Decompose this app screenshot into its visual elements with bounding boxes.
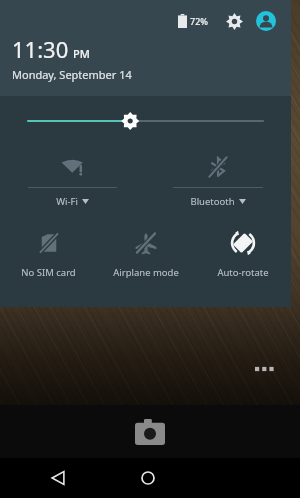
- staticText: PM: [73, 46, 90, 61]
- button[interactable]: No SIM card: [0, 220, 97, 294]
- button[interactable]: Wi-Fi: [0, 146, 145, 220]
- button[interactable]: Airplane mode: [97, 220, 194, 294]
- staticText: Auto-rotate: [217, 266, 269, 279]
- button[interactable]: Settings: [221, 8, 247, 34]
- button[interactable]: Camera: [128, 410, 172, 454]
- staticText: 11:30: [12, 34, 69, 64]
- staticText: Bluetooth: [190, 195, 235, 208]
- staticText: No SIM card: [21, 266, 76, 279]
- button[interactable]: 11:30: [12, 34, 132, 82]
- staticText: Airplane mode: [113, 266, 179, 279]
- button[interactable]: User profile: [253, 8, 279, 34]
- button[interactable]: Back: [40, 460, 76, 496]
- button[interactable]: Brightness: [0, 96, 291, 146]
- staticText: Wi-Fi: [56, 195, 78, 208]
- staticText: Monday, September 14: [12, 67, 132, 82]
- button[interactable]: Home: [130, 460, 166, 496]
- staticText: 72%: [190, 15, 208, 27]
- button[interactable]: Bluetooth: [145, 146, 291, 220]
- button[interactable]: Auto-rotate: [194, 220, 291, 294]
